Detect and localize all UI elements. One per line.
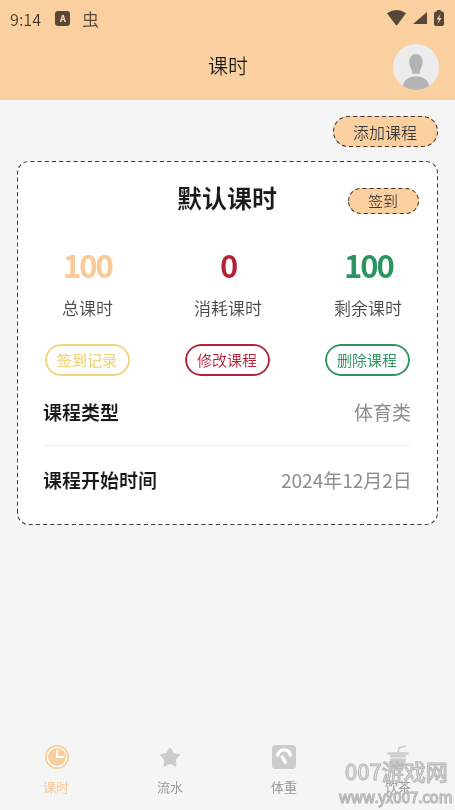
button[interactable]: 流水 — [113, 730, 227, 810]
staticText: www.yx007.com — [339, 786, 453, 808]
button[interactable]: 修改课程 — [185, 344, 270, 376]
button[interactable]: 课程类型 — [17, 379, 438, 445]
button[interactable]: 签到 — [348, 188, 419, 214]
button[interactable]: 删除课程 — [325, 344, 410, 376]
staticText: 流水 — [157, 777, 184, 796]
button[interactable]: 签到记录 — [45, 344, 130, 376]
staticText: 总课时 — [62, 295, 113, 320]
staticText: 默认课时 — [177, 179, 278, 215]
staticText: 课程类型 — [43, 398, 120, 426]
staticText: 体育类 — [354, 398, 412, 426]
button[interactable]: Profile — [393, 44, 439, 90]
staticText: 2024年12月2日 — [281, 466, 412, 494]
button[interactable]: 课程开始时间 — [17, 446, 438, 513]
staticText: 签到 — [368, 190, 399, 212]
button[interactable]: 课时 — [0, 730, 113, 810]
staticText: 0 — [220, 242, 237, 287]
button[interactable]: 体重 — [227, 730, 341, 810]
staticText: 课时 — [43, 777, 70, 796]
staticText: 饮茶 — [385, 777, 412, 796]
staticText: 课时 — [208, 51, 248, 80]
button[interactable]: 添加课程 — [333, 116, 438, 147]
staticText: 100 — [63, 242, 112, 287]
staticText: 100 — [344, 242, 393, 287]
staticText: 课程开始时间 — [43, 466, 158, 494]
staticText: 删除课程 — [337, 349, 398, 371]
staticText: 修改课程 — [197, 349, 258, 371]
staticText: 签到记录 — [57, 349, 118, 371]
staticText: 007游戏网 — [345, 754, 448, 786]
staticText: A — [60, 12, 66, 25]
staticText: 9:14 — [10, 7, 42, 30]
staticText: 消耗课时 — [194, 295, 262, 320]
button[interactable]: 饮茶 — [341, 730, 455, 810]
staticText: 体重 — [271, 777, 298, 796]
staticText: 剩余课时 — [334, 295, 402, 320]
staticText: 添加课程 — [353, 120, 418, 143]
staticText: 虫 — [82, 6, 99, 31]
